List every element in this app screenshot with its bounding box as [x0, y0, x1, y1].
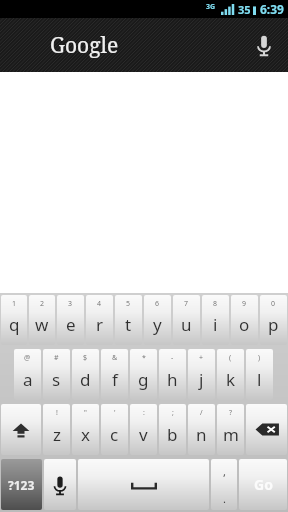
- staticText: s: [52, 368, 61, 391]
- button[interactable]: :: [130, 404, 157, 455]
- staticText: !: [56, 408, 58, 418]
- button[interactable]: Voice search: [240, 21, 288, 69]
- button[interactable]: Space: [78, 459, 209, 510]
- staticText: g: [138, 368, 149, 391]
- staticText: b: [167, 423, 178, 446]
- staticText: y: [153, 313, 162, 336]
- staticText: f: [112, 368, 118, 391]
- other: Space: [131, 479, 157, 491]
- staticText: i: [213, 313, 218, 336]
- button[interactable]: 9: [231, 295, 258, 345]
- staticText: ?: [229, 408, 233, 418]
- button[interactable]: 0: [260, 295, 287, 345]
- staticText: m: [223, 423, 239, 446]
- button[interactable]: Google: [0, 18, 288, 72]
- staticText: e: [66, 313, 76, 336]
- staticText: w: [35, 313, 49, 336]
- button[interactable]: ?123: [1, 459, 42, 510]
- button[interactable]: 2: [29, 295, 55, 345]
- other: Backspace: [254, 422, 280, 437]
- staticText: 6:39: [260, 1, 284, 17]
- button[interactable]: $: [72, 349, 99, 400]
- staticText: Go: [254, 475, 273, 494]
- staticText: 7: [184, 299, 189, 309]
- button[interactable]: Backspace: [246, 404, 287, 455]
- button[interactable]: 8: [202, 295, 229, 345]
- staticText: ": [84, 408, 87, 418]
- button[interactable]: 1: [1, 295, 27, 345]
- staticText: u: [181, 313, 192, 336]
- button[interactable]: !: [43, 404, 70, 455]
- staticText: x: [81, 423, 90, 446]
- button[interactable]: ,: [211, 459, 237, 510]
- staticText: t: [125, 313, 132, 336]
- staticText: ': [114, 408, 116, 418]
- button[interactable]: &: [101, 349, 128, 400]
- staticText: 3: [68, 299, 73, 309]
- staticText: n: [196, 423, 207, 446]
- button[interactable]: ): [246, 349, 273, 400]
- button[interactable]: ': [101, 404, 128, 455]
- staticText: z: [53, 423, 61, 446]
- staticText: o: [239, 313, 250, 336]
- staticText: 6: [155, 299, 160, 309]
- staticText: r: [96, 313, 104, 336]
- staticText: 0: [271, 299, 276, 309]
- button[interactable]: /: [188, 404, 215, 455]
- button[interactable]: (: [217, 349, 244, 400]
- button[interactable]: Voice input: [44, 459, 76, 510]
- staticText: &: [112, 353, 118, 363]
- staticText: 4: [97, 299, 102, 309]
- staticText: +: [199, 353, 204, 363]
- button[interactable]: Go: [239, 459, 287, 510]
- staticText: ,: [223, 464, 226, 479]
- button[interactable]: 5: [115, 295, 142, 345]
- staticText: ;: [172, 408, 174, 418]
- staticText: 9: [242, 299, 247, 309]
- button[interactable]: 4: [86, 295, 113, 345]
- staticText: #: [54, 353, 59, 363]
- staticText: *: [142, 353, 146, 363]
- button[interactable]: ?: [217, 404, 244, 455]
- other: Shift: [10, 419, 32, 441]
- staticText: k: [226, 368, 236, 391]
- staticText: j: [199, 368, 204, 391]
- staticText: -: [171, 353, 174, 363]
- staticText: 8: [213, 299, 218, 309]
- button[interactable]: -: [159, 349, 186, 400]
- button[interactable]: #: [43, 349, 70, 400]
- other: Voice input: [48, 473, 72, 497]
- staticText: d: [80, 368, 91, 391]
- staticText: 5: [126, 299, 131, 309]
- staticText: h: [167, 368, 178, 391]
- button[interactable]: ": [72, 404, 99, 455]
- button[interactable]: 6: [144, 295, 171, 345]
- button[interactable]: +: [188, 349, 215, 400]
- staticText: c: [110, 423, 119, 446]
- staticText: 3G: [206, 2, 216, 12]
- staticText: /: [200, 408, 203, 418]
- button[interactable]: Shift: [1, 404, 41, 455]
- staticText: :: [143, 408, 145, 418]
- staticText: @: [24, 353, 31, 363]
- staticText: q: [9, 313, 20, 336]
- staticText: (: [229, 353, 232, 363]
- button[interactable]: 7: [173, 295, 200, 345]
- staticText: l: [257, 368, 262, 391]
- staticText: .: [223, 491, 226, 506]
- staticText: v: [139, 423, 148, 446]
- button[interactable]: 3: [57, 295, 84, 345]
- staticText: Google: [50, 31, 119, 60]
- staticText: a: [23, 368, 33, 391]
- staticText: 35: [238, 2, 251, 17]
- staticText: p: [268, 313, 279, 336]
- staticText: 1: [12, 299, 17, 309]
- button[interactable]: ;: [159, 404, 186, 455]
- staticText: 2: [40, 299, 45, 309]
- staticText: ): [258, 353, 261, 363]
- staticText: ?123: [8, 477, 35, 493]
- staticText: $: [83, 353, 88, 363]
- button[interactable]: *: [130, 349, 157, 400]
- button[interactable]: @: [14, 349, 41, 400]
